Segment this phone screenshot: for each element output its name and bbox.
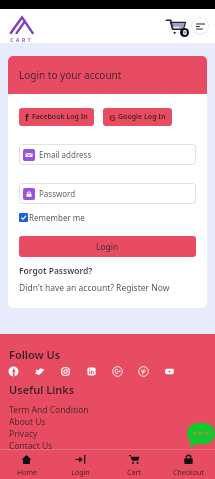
button[interactable]: Email address <box>19 144 196 165</box>
staticText: Email address <box>39 149 92 160</box>
staticText: CART <box>10 36 33 43</box>
button[interactable]: Checkout <box>161 450 215 479</box>
button[interactable]: Cart <box>107 450 161 479</box>
button[interactable]: Didn't have an account? Register Now <box>19 282 170 294</box>
staticText: Remember me <box>29 212 85 223</box>
button[interactable]: Privacy <box>9 428 38 440</box>
staticText: f <box>25 111 29 123</box>
staticText: Cart <box>127 468 141 478</box>
button[interactable]: Chat <box>187 423 215 448</box>
staticText: Contact Us <box>9 440 53 452</box>
button[interactable]: Google Plus <box>112 366 123 377</box>
staticText: Login to your account <box>19 68 122 82</box>
staticText: About Us <box>9 416 46 428</box>
staticText: Login <box>71 468 90 478</box>
button[interactable]: LinkedIn <box>86 366 97 377</box>
staticText: Term And Condition <box>9 404 89 416</box>
button[interactable]: About Us <box>9 416 46 428</box>
button[interactable]: Twitter <box>34 366 45 377</box>
button[interactable]: Login <box>53 450 107 479</box>
button[interactable]: Facebook <box>8 366 19 377</box>
staticText: Facebook Log In <box>32 112 88 122</box>
button[interactable]: Contact Us <box>9 440 53 452</box>
button[interactable]: Menu <box>191 17 209 35</box>
button[interactable]: f <box>19 108 94 126</box>
button[interactable]: Pinterest <box>138 366 149 377</box>
staticText: Google Log In <box>118 112 166 122</box>
staticText: Password <box>39 188 76 199</box>
button[interactable]: Remember me <box>19 212 85 223</box>
staticText: 0 <box>183 28 187 37</box>
staticText: Login <box>96 241 119 253</box>
button[interactable]: Cart <box>163 14 187 38</box>
button[interactable]: Password <box>19 183 196 204</box>
button[interactable]: Term And Condition <box>9 404 89 416</box>
staticText: Home <box>17 468 37 478</box>
staticText: G <box>109 111 116 124</box>
button[interactable]: Login <box>19 236 196 257</box>
button[interactable]: Forgot Password? <box>19 265 93 277</box>
staticText: Useful Links <box>9 382 75 397</box>
staticText: Follow Us <box>9 347 61 362</box>
staticText: Checkout <box>173 468 204 478</box>
button[interactable]: G <box>103 108 172 126</box>
button[interactable]: Home <box>0 450 53 479</box>
staticText: Privacy <box>9 428 38 440</box>
button[interactable]: Instagram <box>60 366 71 377</box>
button[interactable]: YouTube <box>164 366 175 377</box>
